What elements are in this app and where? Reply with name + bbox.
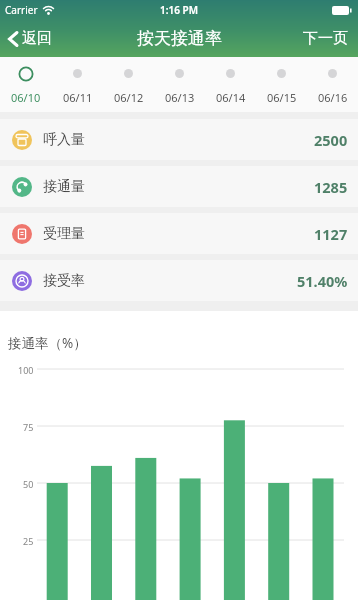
staticText: 75 [23,421,34,433]
staticText: 06/15 [267,90,297,105]
staticText: 06/13 [165,90,195,105]
staticText: 返回 [22,29,52,48]
staticText: 100 [18,364,34,376]
staticText: 下一页 [303,29,348,48]
button[interactable]: 返回 [6,27,54,50]
staticText: 1127 [314,224,348,244]
staticText: 接通率（%） [8,334,87,352]
button[interactable]: 下一页 [301,27,350,50]
staticText: 06/10 [11,90,41,105]
staticText: 06/12 [114,90,144,105]
button[interactable]: 接通量 [0,166,358,207]
button[interactable]: 呼入量 [0,119,358,160]
staticText: 接通量 [43,178,85,196]
staticText: 呼入量 [43,131,85,149]
button[interactable]: 06/14 [205,57,256,112]
staticText: Carrier [5,3,38,17]
button[interactable]: 接受率 [0,260,358,301]
staticText: 受理量 [43,225,85,243]
staticText: 1285 [314,177,348,197]
button[interactable]: 受理量 [0,213,358,254]
button[interactable]: 06/15 [256,57,307,112]
button[interactable]: 06/13 [154,57,205,112]
staticText: 25 [23,535,34,547]
button[interactable]: 06/12 [103,57,154,112]
button[interactable]: 06/11 [52,57,103,112]
staticText: 06/14 [216,90,246,105]
staticText: 06/16 [318,90,348,105]
staticText: 按天接通率 [137,28,222,49]
button[interactable]: 06/16 [307,57,358,112]
staticText: 50 [23,478,34,490]
staticText: 1:16 PM [160,3,198,17]
staticText: 接受率 [43,272,85,290]
button[interactable]: 06/10 [0,57,52,112]
staticText: 2500 [314,130,348,150]
staticText: 51.40% [297,271,348,291]
staticText: 06/11 [63,90,93,105]
